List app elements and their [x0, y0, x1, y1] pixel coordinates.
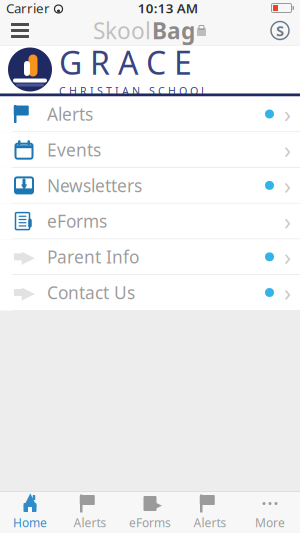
- staticText: ›: [284, 170, 291, 200]
- staticText: Alerts: [73, 514, 106, 530]
- button[interactable]: Alerts: [60, 492, 120, 532]
- button[interactable]: Alerts: [180, 492, 240, 532]
- staticText: 10:13 AM: [138, 0, 198, 17]
- button[interactable]: ▸: [120, 492, 180, 532]
- staticText: Skool: [93, 15, 151, 45]
- button[interactable]: ▶: [0, 239, 300, 275]
- button[interactable]: Events: [0, 132, 300, 168]
- button[interactable]: Menu: [0, 15, 40, 45]
- staticText: eForms: [129, 514, 171, 530]
- staticText: More: [255, 514, 285, 530]
- staticText: Home: [13, 514, 47, 530]
- staticText: ▲: [23, 489, 36, 508]
- staticText: ▸: [154, 496, 161, 513]
- button[interactable]: ▲: [0, 492, 60, 532]
- button[interactable]: Alerts: [0, 96, 300, 132]
- button[interactable]: SkoolBag: [260, 15, 300, 45]
- staticText: ▶: [21, 247, 34, 267]
- staticText: Parent Info: [47, 245, 139, 268]
- staticText: Alerts: [47, 102, 93, 125]
- button[interactable]: eForms: [0, 204, 300, 239]
- staticText: Carrier: [6, 0, 50, 17]
- staticText: ›: [284, 242, 291, 272]
- staticText: Newsletters: [47, 174, 142, 197]
- staticText: Events: [47, 138, 101, 161]
- staticText: Bag: [152, 15, 195, 45]
- staticText: S: [276, 21, 284, 40]
- staticText: ▶: [21, 283, 34, 302]
- button[interactable]: ▶: [0, 275, 300, 311]
- staticText: ›: [284, 135, 291, 165]
- staticText: Alerts: [193, 514, 226, 530]
- staticText: Contact Us: [47, 281, 135, 304]
- button[interactable]: ▾: [0, 168, 300, 204]
- staticText: eForms: [47, 210, 107, 233]
- staticText: ›: [284, 277, 291, 307]
- staticText: ›: [284, 99, 291, 129]
- staticText: ›: [284, 206, 291, 236]
- staticText: ▾: [21, 180, 27, 193]
- button[interactable]: More: [240, 492, 300, 532]
- staticText: G R A C E: [59, 41, 192, 84]
- staticText: C H R I S T I A N S C H O O L: [59, 84, 207, 98]
